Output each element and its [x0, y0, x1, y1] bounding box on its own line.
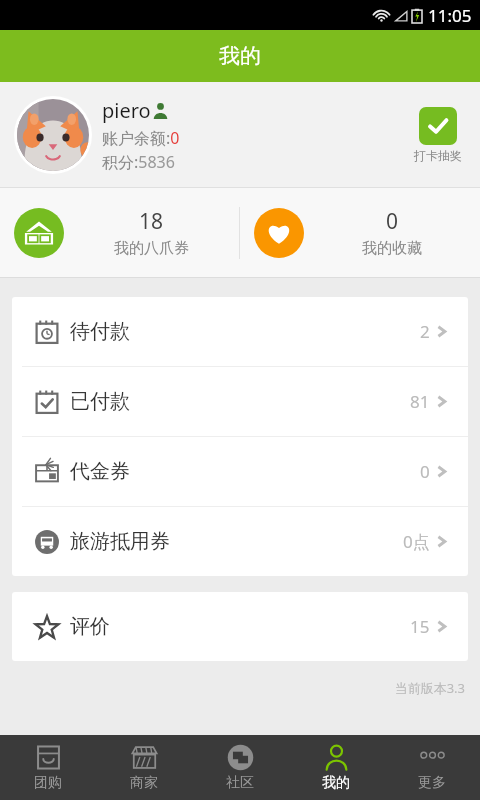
staticText: 11:05	[428, 4, 472, 27]
staticText: 代金券	[70, 459, 130, 484]
staticText: 社区	[226, 774, 254, 792]
staticText: 更多	[418, 774, 446, 792]
staticText: 0	[420, 460, 430, 483]
staticText: 账户余额:0	[102, 127, 180, 149]
staticText: 旅游抵用券	[70, 529, 170, 554]
staticText: 我的八爪券	[114, 239, 189, 258]
staticText: 评价	[70, 614, 110, 639]
staticText: 0点	[403, 530, 430, 553]
button[interactable]: 评价	[12, 592, 468, 661]
staticText: 积分:5836	[102, 151, 175, 173]
staticText: piero	[102, 97, 151, 124]
button[interactable]: 18	[0, 188, 239, 277]
button[interactable]: 商家	[96, 735, 192, 800]
staticText: 81	[410, 390, 430, 413]
button[interactable]: 0	[240, 188, 480, 277]
staticText: 15	[410, 615, 430, 638]
staticText: 0	[386, 207, 399, 236]
button[interactable]: 代金券	[12, 437, 468, 506]
button[interactable]: 我的	[288, 735, 384, 800]
staticText: 我的	[219, 43, 261, 69]
staticText: 团购	[34, 774, 62, 792]
staticText: 我的收藏	[362, 239, 422, 258]
staticText: 18	[139, 207, 164, 236]
other: 打卡抽奖	[419, 107, 457, 145]
staticText: 我的	[322, 774, 350, 792]
button[interactable]: 已付款	[12, 367, 468, 436]
button[interactable]: 打卡抽奖	[410, 103, 466, 167]
staticText: 2	[420, 320, 430, 343]
button[interactable]: 旅游抵用券	[12, 507, 468, 576]
button[interactable]: 团购	[0, 735, 96, 800]
button[interactable]: 社区	[192, 735, 288, 800]
staticText: 待付款	[70, 319, 130, 344]
staticText: 商家	[130, 774, 158, 792]
staticText: 已付款	[70, 389, 130, 414]
button[interactable]: 更多	[384, 735, 480, 800]
button[interactable]: 待付款	[12, 297, 468, 366]
staticText: 当前版本3.3	[0, 679, 465, 697]
staticText: 打卡抽奖	[414, 148, 462, 163]
